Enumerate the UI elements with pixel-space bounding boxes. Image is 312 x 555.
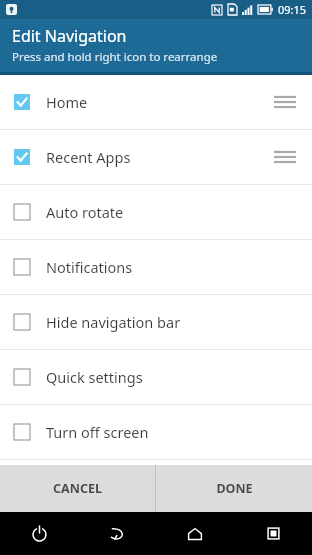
staticText: Home — [46, 92, 88, 112]
button[interactable]: Back — [78, 512, 156, 555]
staticText: Hide navigation bar — [46, 312, 181, 332]
button[interactable]: CANCEL — [0, 465, 155, 512]
staticText: DONE — [216, 480, 253, 497]
button[interactable]: Recent Apps — [0, 130, 312, 184]
button[interactable]: Quick settings — [0, 350, 312, 404]
staticText: CANCEL — [53, 480, 102, 497]
button[interactable]: Notifications — [0, 240, 312, 294]
staticText: Auto rotate — [46, 202, 124, 222]
button[interactable]: Hide navigation bar — [0, 295, 312, 349]
staticText: Edit Navigation — [12, 25, 127, 47]
button[interactable]: Turn off screen — [0, 405, 312, 459]
button[interactable]: Power — [0, 512, 78, 555]
staticText: 09:15 — [278, 2, 307, 17]
button[interactable]: Home — [156, 512, 234, 555]
staticText: Turn off screen — [46, 422, 149, 442]
button[interactable]: Auto rotate — [0, 185, 312, 239]
button[interactable]: Recent apps — [234, 512, 312, 555]
button[interactable]: Home — [0, 75, 312, 129]
button[interactable]: Reorder Recent Apps — [270, 142, 300, 172]
button[interactable]: DONE — [156, 465, 312, 512]
staticText: Press and hold right icon to rearrange — [12, 49, 218, 65]
staticText: Recent Apps — [46, 147, 131, 167]
staticText: Quick settings — [46, 367, 143, 387]
button[interactable]: Reorder Home — [270, 87, 300, 117]
staticText: Notifications — [46, 257, 133, 277]
